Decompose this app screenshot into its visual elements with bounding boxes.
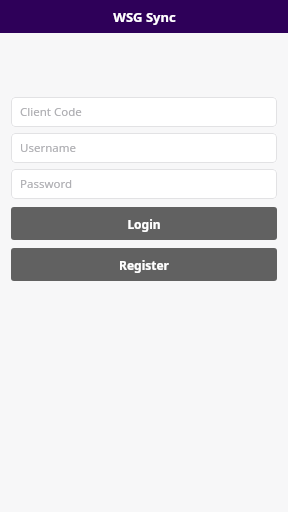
staticText: WSG Sync xyxy=(113,8,176,26)
button[interactable]: Login xyxy=(11,207,277,240)
staticText: Username xyxy=(20,140,76,156)
staticText: Password xyxy=(20,176,73,192)
button[interactable]: Register xyxy=(11,248,277,281)
button[interactable]: Client Code xyxy=(11,97,277,127)
staticText: Client Code xyxy=(20,104,82,120)
staticText: Login xyxy=(127,216,161,232)
staticText: Register xyxy=(119,257,169,273)
button[interactable]: Password xyxy=(11,169,277,199)
button[interactable]: Username xyxy=(11,133,277,163)
